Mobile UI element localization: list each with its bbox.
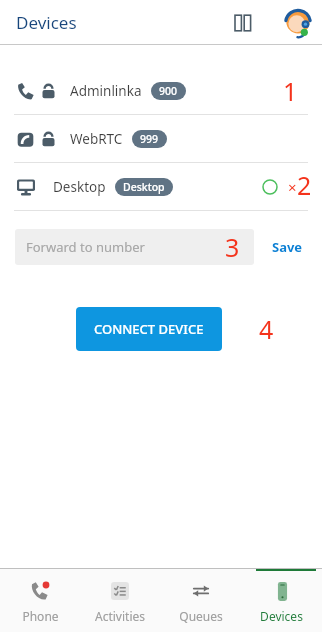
button[interactable]: Adminlinka [0, 67, 322, 114]
button[interactable]: Status [258, 175, 282, 199]
button[interactable]: Queues [160, 569, 241, 632]
staticText: Devices [260, 608, 303, 624]
staticText: 999 [140, 132, 159, 146]
staticText: Devices [16, 11, 77, 34]
staticText: 1 [283, 74, 298, 108]
staticText: Phone [22, 608, 59, 624]
button[interactable]: Activities [80, 569, 160, 632]
button[interactable]: Forward to number [15, 229, 254, 265]
staticText: WebRTC [70, 130, 123, 148]
staticText: Desktop [123, 180, 165, 194]
staticText: Activities [95, 608, 145, 624]
staticText: × [288, 177, 297, 197]
staticText: CONNECT DEVICE [94, 320, 204, 338]
button[interactable]: Devices [241, 569, 322, 632]
button[interactable]: WebRTC [0, 115, 322, 162]
button[interactable]: Profile [280, 5, 316, 41]
button[interactable]: Save [268, 232, 307, 262]
staticText: Forward to number [26, 238, 145, 256]
button[interactable]: Desktop [0, 163, 322, 210]
staticText: Queues [179, 608, 223, 624]
staticText: 3 [225, 230, 240, 264]
staticText: Save [272, 238, 303, 256]
button[interactable]: CONNECT DEVICE [76, 307, 222, 351]
staticText: Desktop [53, 178, 106, 196]
staticText: Adminlinka [70, 82, 142, 100]
button[interactable]: Phone [0, 569, 80, 632]
staticText: 2 [297, 168, 312, 202]
staticText: 900 [159, 84, 178, 98]
staticText: 4 [259, 312, 274, 346]
button[interactable]: Pause [226, 6, 260, 40]
